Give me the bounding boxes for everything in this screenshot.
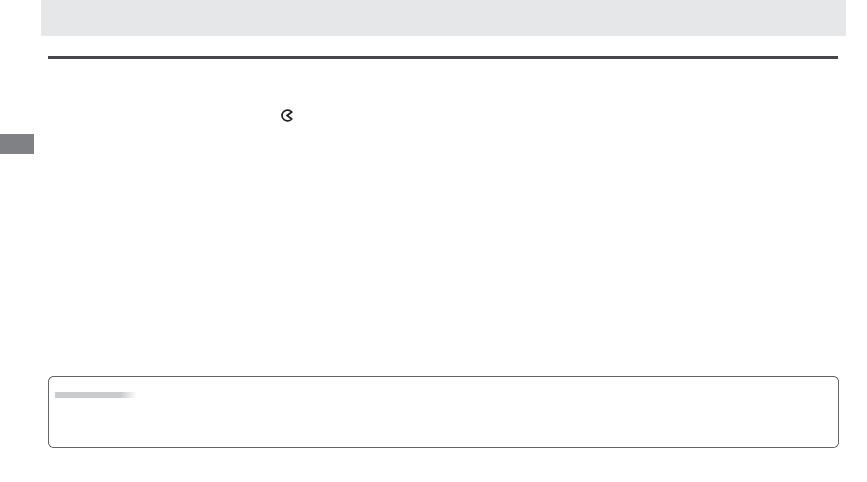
- button[interactable]: Loading: [281, 109, 294, 122]
- button[interactable]: [48, 376, 839, 448]
